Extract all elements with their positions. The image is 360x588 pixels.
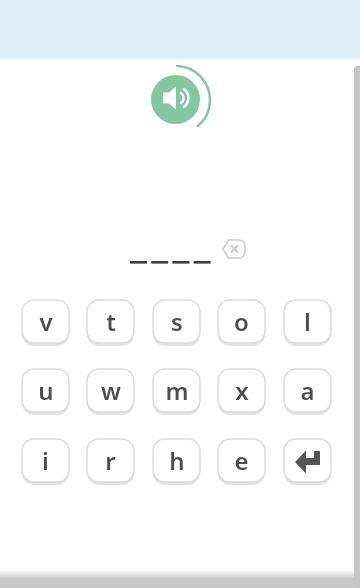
button[interactable]: h — [153, 439, 200, 482]
button[interactable]: a — [284, 369, 331, 412]
button[interactable]: i — [22, 439, 69, 482]
staticText: a — [300, 374, 315, 407]
button[interactable]: e — [218, 439, 265, 482]
staticText: u — [38, 374, 54, 407]
button[interactable] — [151, 75, 200, 124]
staticText: l — [304, 305, 311, 338]
staticText: m — [165, 374, 189, 407]
button[interactable]: o — [218, 300, 265, 343]
staticText: e — [234, 444, 249, 477]
button[interactable]: w — [87, 369, 134, 412]
button[interactable]: v — [22, 300, 69, 343]
button[interactable]: m — [153, 369, 200, 412]
staticText: h — [169, 444, 185, 477]
button[interactable]: l — [284, 300, 331, 343]
staticText: s — [171, 305, 183, 338]
staticText: o — [234, 305, 249, 338]
button[interactable] — [222, 239, 246, 259]
staticText: w — [101, 374, 121, 407]
button[interactable]: s — [153, 300, 200, 343]
button[interactable]: r — [87, 439, 134, 482]
button[interactable]: x — [218, 369, 265, 412]
staticText: i — [42, 444, 49, 477]
button[interactable] — [284, 439, 331, 482]
staticText: v — [39, 305, 53, 338]
staticText: r — [105, 444, 116, 477]
button[interactable]: t — [87, 300, 134, 343]
button[interactable]: u — [22, 369, 69, 412]
staticText: x — [235, 374, 249, 407]
staticText: t — [106, 305, 116, 338]
